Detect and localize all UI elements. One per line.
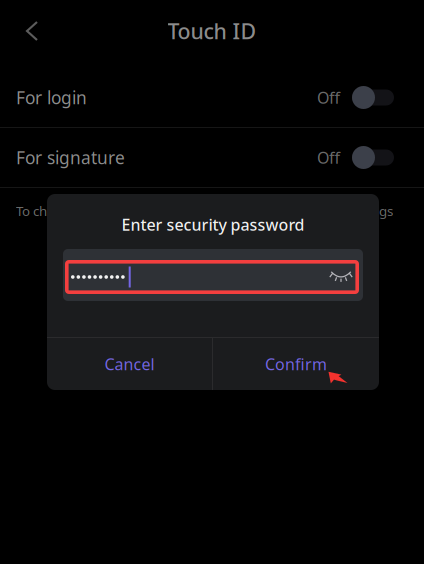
button[interactable]: For login (0, 68, 424, 127)
staticText: Enter security password (121, 214, 304, 235)
button[interactable]: Confirm (213, 338, 379, 390)
staticText: To change this setting, you need to go t… (16, 202, 393, 220)
button[interactable]: Back (0, 0, 60, 51)
staticText: Off (317, 87, 340, 108)
staticText: For signature (16, 146, 125, 169)
staticText: Confirm (265, 353, 327, 375)
button[interactable]: Cancel (47, 338, 212, 390)
staticText: Touch ID (167, 17, 256, 45)
staticText: Off (317, 147, 340, 168)
staticText: For login (16, 86, 87, 109)
staticText: Cancel (104, 353, 154, 375)
button[interactable]: For signature (0, 128, 424, 187)
